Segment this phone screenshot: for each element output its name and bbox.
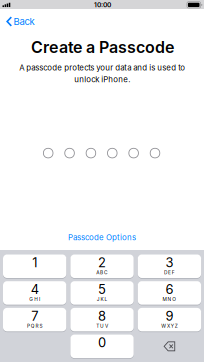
- staticText: 9: [165, 308, 173, 324]
- staticText: Back: [13, 16, 34, 27]
- staticText: MNO: [163, 296, 176, 302]
- staticText: JKL: [97, 296, 107, 302]
- staticText: 5: [98, 281, 106, 297]
- staticText: 7: [31, 308, 38, 324]
- button[interactable]: 6: [138, 281, 201, 305]
- staticText: 6: [165, 281, 173, 297]
- button[interactable]: 0: [70, 335, 134, 358]
- staticText: Passcode Options: [68, 233, 136, 242]
- staticText: DEF: [164, 270, 175, 275]
- staticText: WXYZ: [161, 323, 178, 329]
- staticText: 10:00: [94, 1, 111, 9]
- staticText: ABC: [96, 270, 108, 275]
- button[interactable]: 3: [138, 254, 201, 278]
- staticText: 4: [31, 281, 39, 297]
- staticText: PQRS: [27, 323, 42, 329]
- staticText: GHI: [29, 296, 40, 302]
- button[interactable]: Passcode Options: [58, 229, 146, 246]
- staticText: 3: [165, 255, 173, 270]
- staticText: TUV: [96, 323, 108, 329]
- staticText: 1: [32, 255, 37, 270]
- button[interactable]: 1: [3, 254, 66, 278]
- button[interactable]: 8: [70, 308, 134, 331]
- button[interactable]: 5: [70, 281, 134, 305]
- staticText: Create a Passcode: [31, 37, 174, 57]
- button[interactable]: 9: [138, 308, 201, 331]
- button[interactable]: 7: [3, 308, 66, 331]
- button[interactable]: 2: [70, 254, 134, 278]
- button[interactable]: Back: [0, 13, 40, 29]
- button[interactable]: 4: [3, 281, 66, 305]
- staticText: 0: [98, 335, 106, 350]
- staticText: 2: [98, 255, 106, 270]
- staticText: 8: [98, 308, 106, 324]
- staticText: A passcode protects your data and is use…: [19, 63, 185, 84]
- button[interactable]: Delete: [138, 335, 201, 358]
